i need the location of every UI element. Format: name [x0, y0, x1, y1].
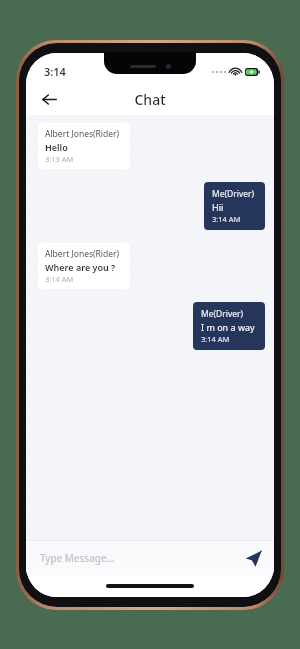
staticText: I m on a way: [201, 321, 255, 333]
staticText: Chat: [134, 90, 166, 109]
button[interactable]: Send: [236, 541, 270, 575]
staticText: Albert Jones(Rider): [45, 128, 120, 140]
staticText: Where are you ?: [45, 261, 116, 273]
staticText: Albert Jones(Rider): [45, 248, 120, 260]
staticText: Type Message…: [40, 551, 115, 565]
button[interactable]: Me(Driver): [204, 182, 265, 230]
staticText: Me(Driver): [201, 308, 244, 320]
staticText: 3:14 AM: [212, 214, 241, 224]
button[interactable]: Albert Jones(Rider): [38, 243, 130, 289]
button[interactable]: Back: [34, 84, 64, 114]
button[interactable]: Albert Jones(Rider): [38, 123, 130, 169]
staticText: 3:14: [44, 64, 66, 79]
button[interactable]: Type Message…: [26, 551, 236, 565]
staticText: 3:13 AM: [45, 154, 74, 164]
staticText: Hello: [45, 141, 68, 153]
button[interactable]: Me(Driver): [193, 302, 265, 350]
staticText: 3:14 AM: [201, 334, 230, 344]
staticText: 3:14 AM: [45, 274, 74, 284]
staticText: Me(Driver): [212, 188, 255, 200]
staticText: Hii: [212, 201, 224, 213]
